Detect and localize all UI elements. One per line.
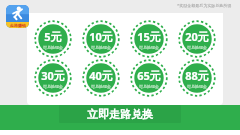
button[interactable]: 走路赚钱 [6, 5, 29, 28]
staticText: 可兑换现金 [91, 84, 111, 89]
button[interactable]: 10元 [82, 20, 120, 58]
staticText: 10元 [89, 29, 113, 44]
staticText: 可兑换现金 [187, 84, 207, 89]
staticText: 65元 [137, 68, 161, 83]
button[interactable]: 88元 [178, 59, 216, 97]
staticText: 可兑换现金 [139, 45, 159, 50]
button[interactable]: 5元 [34, 20, 72, 58]
staticText: 88元 [185, 68, 209, 83]
button[interactable]: 40元 [82, 59, 120, 97]
staticText: 立即走路兑换 [87, 107, 153, 121]
staticText: 走路赚钱 [10, 23, 26, 28]
staticText: 可兑换现金 [187, 45, 207, 50]
button[interactable]: 立即走路兑换 [59, 105, 181, 123]
staticText: 15元 [137, 29, 161, 44]
staticText: 可兑换现金 [43, 84, 63, 89]
staticText: 20元 [185, 29, 209, 44]
staticText: 30元 [41, 68, 65, 83]
staticText: 可兑换现金 [43, 45, 63, 50]
button[interactable]: 30元 [34, 59, 72, 97]
staticText: 5元 [44, 29, 62, 44]
button[interactable]: 65元 [130, 59, 168, 97]
staticText: 可兑换现金 [91, 45, 111, 50]
staticText: 40元 [89, 68, 113, 83]
staticText: *奖励金额最后为实际兑换所得 [177, 3, 232, 8]
button[interactable]: 15元 [130, 20, 168, 58]
staticText: 可兑换现金 [139, 84, 159, 89]
button[interactable]: 20元 [178, 20, 216, 58]
